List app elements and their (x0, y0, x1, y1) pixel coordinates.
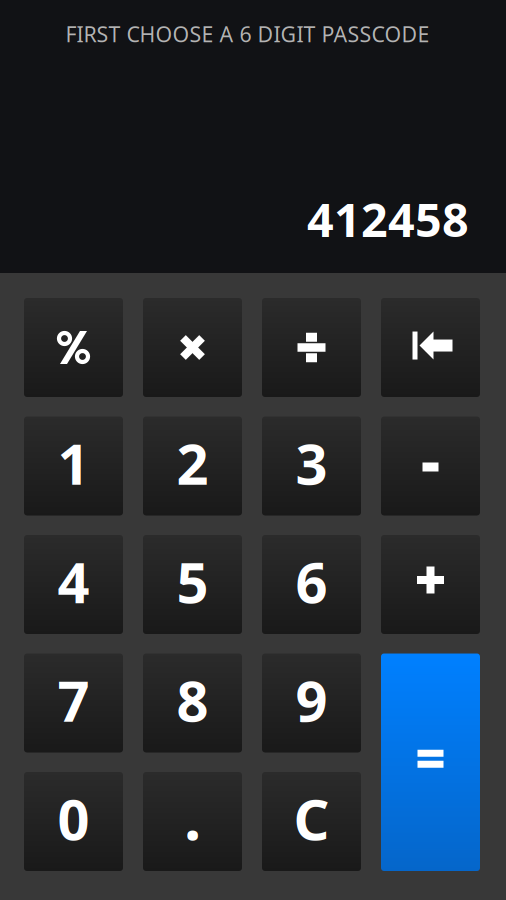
button[interactable]: 3 (262, 416, 361, 515)
staticText: 412458 (307, 188, 469, 250)
staticText: 6 (295, 544, 327, 619)
button[interactable]: C (262, 772, 361, 871)
button[interactable]: Plus (381, 535, 480, 634)
button[interactable]: 1 (24, 416, 123, 515)
button[interactable]: 4 (24, 535, 123, 634)
button[interactable]: 2 (143, 416, 242, 515)
button[interactable]: 6 (262, 535, 361, 634)
button[interactable]: Multiply (143, 298, 242, 397)
button[interactable]: Percent (24, 298, 123, 397)
staticText: 9 (295, 663, 327, 737)
button[interactable]: 0 (24, 772, 123, 871)
staticText: . (184, 776, 201, 857)
staticText: 4 (57, 544, 89, 619)
button[interactable]: 8 (143, 653, 242, 752)
button[interactable]: Delete (381, 298, 480, 397)
staticText: 2 (176, 426, 208, 500)
button[interactable]: Divide (262, 298, 361, 397)
staticText: 3 (295, 426, 327, 500)
staticText: 5 (176, 544, 208, 619)
button[interactable]: Minus (381, 416, 480, 515)
button[interactable]: 9 (262, 653, 361, 752)
staticText: 7 (57, 663, 89, 737)
staticText: FIRST CHOOSE A 6 DIGIT PASSCODE (65, 20, 429, 48)
button[interactable]: 7 (24, 653, 123, 752)
staticText: 1 (57, 426, 89, 500)
button[interactable]: Equals (381, 653, 480, 871)
staticText: 8 (176, 663, 208, 737)
staticText: C (293, 781, 329, 856)
staticText: 0 (57, 781, 89, 856)
button[interactable]: 5 (143, 535, 242, 634)
button[interactable]: . (143, 772, 242, 871)
